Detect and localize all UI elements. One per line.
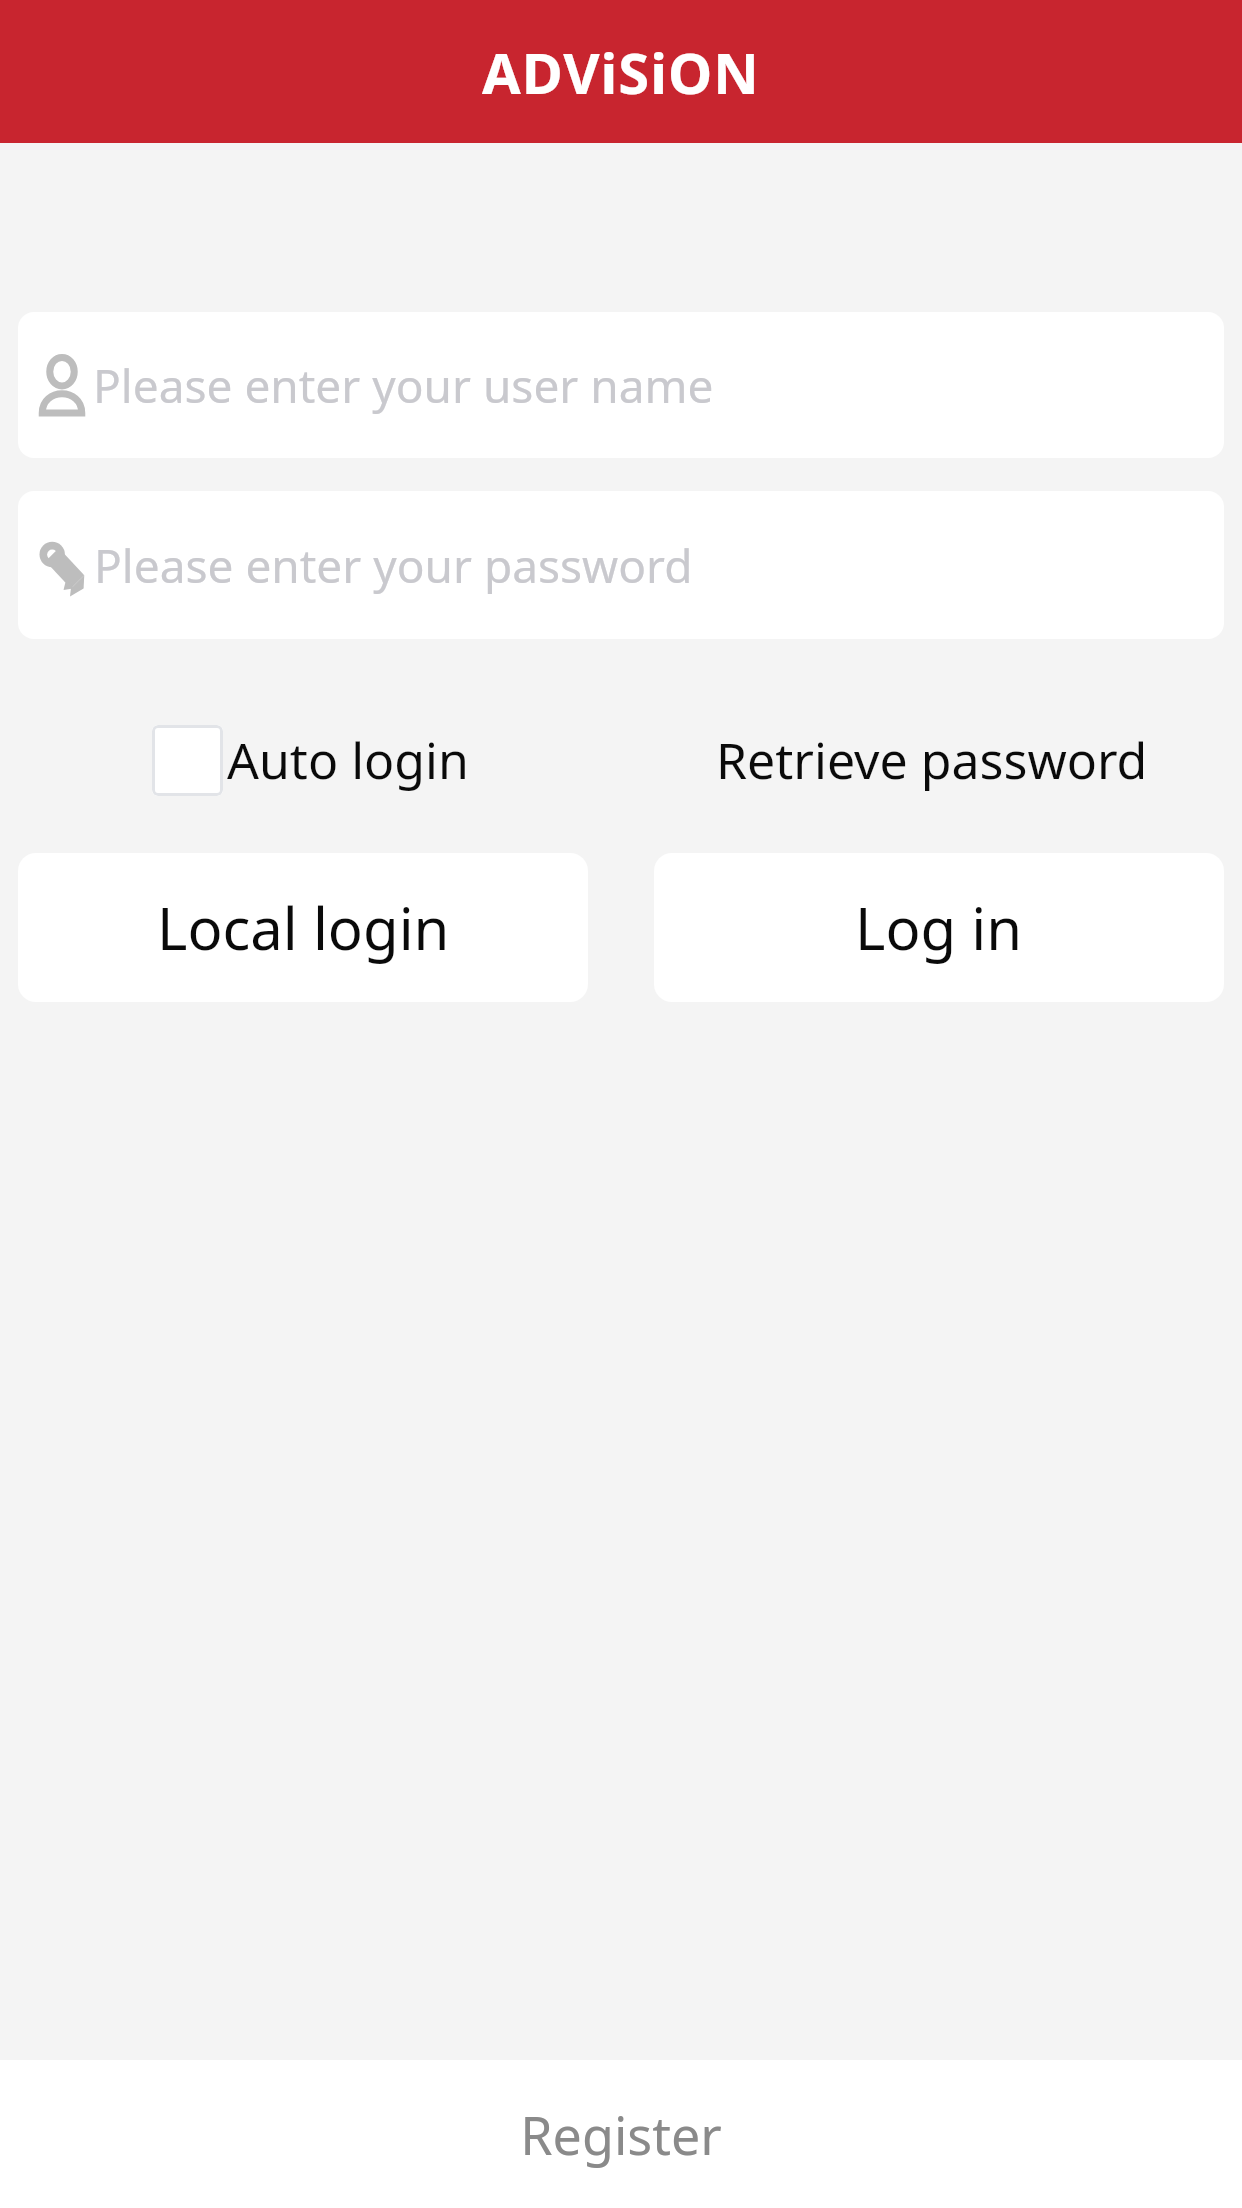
- staticText: Retrieve password: [716, 726, 1148, 794]
- staticText: ADViSiON: [482, 34, 760, 110]
- button[interactable]: Please enter your user name: [18, 312, 1224, 458]
- button[interactable]: Auto login: [0, 715, 621, 805]
- staticText: Please enter your password: [94, 534, 693, 597]
- button[interactable]: Register: [0, 2060, 1242, 2208]
- button[interactable]: Please enter your password: [18, 491, 1224, 639]
- button[interactable]: Local login: [18, 853, 588, 1002]
- staticText: Register: [520, 2099, 722, 2170]
- staticText: Please enter your user name: [93, 354, 714, 417]
- staticText: Auto login: [227, 726, 469, 794]
- staticText: Local login: [157, 888, 450, 967]
- button[interactable]: Retrieve password: [621, 715, 1242, 805]
- button[interactable]: Log in: [654, 853, 1224, 1002]
- staticText: Log in: [855, 888, 1023, 967]
